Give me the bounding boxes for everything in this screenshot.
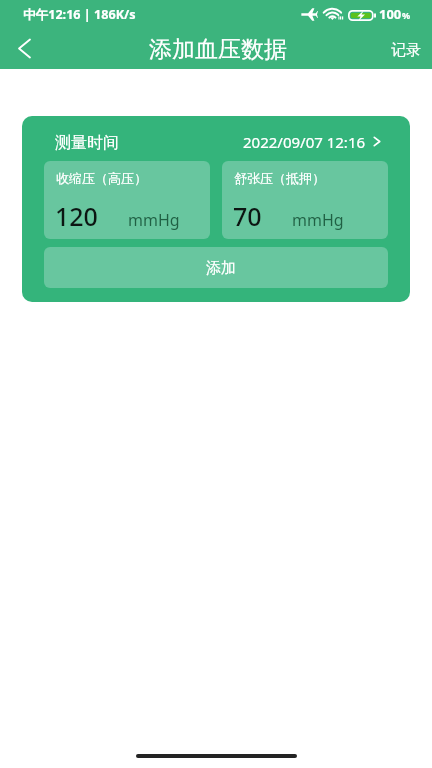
staticText: 测量时间 [55, 133, 119, 153]
staticText: 添加血压数据 [149, 35, 287, 64]
staticText: 中午12:16 | 186K/s [23, 6, 136, 23]
staticText: 120 [55, 199, 98, 233]
button[interactable]: 舒张压（抵押） [222, 161, 388, 239]
button[interactable]: 测量时间 [22, 116, 410, 161]
staticText: 收缩压（高压） [56, 170, 147, 186]
other: Battery charging [348, 10, 376, 21]
staticText: 70 [233, 199, 262, 233]
staticText: % [402, 9, 411, 21]
staticText: mmHg [292, 209, 344, 231]
other: Airplane mode [301, 8, 318, 21]
button[interactable]: 收缩压（高压） [44, 161, 210, 239]
other: Wi-Fi [324, 8, 344, 20]
button[interactable]: 添加 [44, 247, 388, 288]
staticText: 2022/09/07 12:16 [243, 132, 366, 152]
staticText: 记录 [391, 41, 421, 60]
staticText: 舒张压（抵押） [234, 170, 325, 186]
staticText: mmHg [128, 209, 180, 231]
button[interactable]: 记录 [373, 31, 432, 70]
button[interactable]: Back [0, 24, 48, 72]
staticText: 添加 [206, 259, 236, 278]
staticText: 100 [379, 5, 402, 23]
